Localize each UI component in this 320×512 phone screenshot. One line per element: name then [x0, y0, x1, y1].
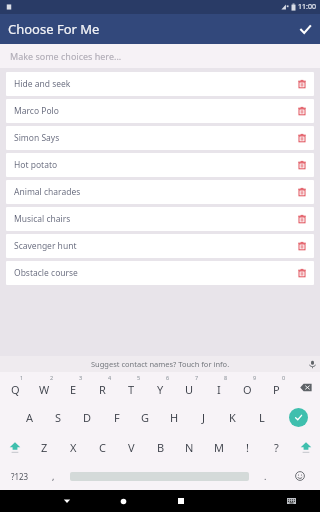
button[interactable]: D [73, 402, 102, 432]
staticText: Q [11, 382, 20, 397]
button[interactable]: Delete Musical chairs [290, 207, 314, 231]
button[interactable]: Delete Hot potato [290, 153, 314, 177]
staticText: B [157, 440, 165, 455]
button[interactable]: L [247, 402, 276, 432]
staticText: A [26, 410, 34, 425]
staticText: 6 [166, 374, 170, 381]
button[interactable]: Home [95, 490, 152, 512]
staticText: Suggest contact names? Touch for info. [91, 359, 230, 369]
button[interactable]: Delete Animal charades [290, 180, 314, 204]
staticText: ! [246, 440, 249, 455]
button[interactable]: ! [233, 432, 262, 462]
staticText: P [273, 382, 280, 397]
staticText: M [214, 440, 224, 455]
button[interactable]: U [175, 372, 204, 402]
button[interactable]: E [59, 372, 88, 402]
button[interactable]: Scavenger hunt [6, 234, 314, 258]
staticText: Z [41, 440, 48, 455]
staticText: N [185, 440, 194, 455]
button[interactable]: J [189, 402, 218, 432]
button[interactable]: Backspace [291, 372, 320, 402]
staticText: V [128, 440, 135, 455]
button[interactable]: Enter [276, 402, 320, 432]
staticText: Animal charades [14, 186, 290, 198]
staticText: W [39, 382, 50, 397]
button[interactable]: Z [30, 432, 59, 462]
button[interactable]: Emoji [280, 462, 320, 490]
button[interactable]: R [88, 372, 117, 402]
button[interactable]: P [262, 372, 291, 402]
staticText: Make some choices here... [10, 50, 122, 62]
staticText: C [99, 440, 106, 455]
staticText: D [83, 410, 92, 425]
button[interactable]: Recent apps [152, 490, 209, 512]
button[interactable]: M [204, 432, 233, 462]
button[interactable]: Space [68, 462, 251, 490]
button[interactable]: Marco Polo [6, 99, 314, 123]
button[interactable]: H [160, 402, 189, 432]
staticText: . [264, 470, 267, 482]
staticText: 1 [20, 374, 24, 381]
button[interactable]: S [44, 402, 73, 432]
button[interactable]: Done [290, 14, 320, 44]
button[interactable]: V [117, 432, 146, 462]
staticText: Hot potato [14, 159, 290, 171]
button[interactable]: Simon Says [6, 126, 314, 150]
staticText: S [55, 410, 62, 425]
staticText: Marco Polo [14, 105, 290, 117]
staticText: J [202, 410, 206, 425]
staticText: Y [157, 382, 164, 397]
staticText: L [259, 410, 265, 425]
button[interactable]: , [39, 462, 68, 490]
button[interactable]: Y [146, 372, 175, 402]
button[interactable]: K [218, 402, 247, 432]
button[interactable]: I [204, 372, 233, 402]
button[interactable]: Delete Obstacle course [290, 261, 314, 285]
button[interactable]: C [88, 432, 117, 462]
staticText: ?123 [11, 471, 29, 482]
staticText: 2 [50, 374, 54, 381]
button[interactable]: Hot potato [6, 153, 314, 177]
staticText: 8 [224, 374, 228, 381]
button[interactable]: O [233, 372, 262, 402]
button[interactable]: Shift [0, 432, 30, 462]
staticText: 7 [195, 374, 199, 381]
button[interactable]: W [30, 372, 59, 402]
button[interactable]: Q [0, 372, 30, 402]
button[interactable]: N [175, 432, 204, 462]
button[interactable]: Animal charades [6, 180, 314, 204]
staticText: 11:00 [298, 2, 316, 12]
button[interactable]: Delete Marco Polo [290, 99, 314, 123]
staticText: X [70, 440, 77, 455]
button[interactable]: Musical chairs [6, 207, 314, 231]
button[interactable]: F [102, 402, 131, 432]
staticText: Simon Says [14, 132, 290, 144]
button[interactable]: ?123 [0, 462, 39, 490]
button[interactable]: T [117, 372, 146, 402]
button[interactable]: . [251, 462, 280, 490]
staticText: Obstacle course [14, 267, 290, 279]
button[interactable]: Back [38, 490, 95, 512]
button[interactable]: Delete Hide and seek [290, 72, 314, 96]
button[interactable]: B [146, 432, 175, 462]
button[interactable]: G [131, 402, 160, 432]
staticText: ? [274, 440, 279, 455]
button[interactable]: X [59, 432, 88, 462]
button[interactable]: Switch keyboard [266, 490, 316, 512]
staticText: T [128, 382, 135, 397]
button[interactable]: Delete Simon Says [290, 126, 314, 150]
button[interactable]: A [15, 402, 44, 432]
staticText: F [114, 410, 120, 425]
button[interactable]: Obstacle course [6, 261, 314, 285]
staticText: U [185, 382, 194, 397]
button[interactable]: ? [262, 432, 291, 462]
button[interactable]: Hide and seek [6, 72, 314, 96]
staticText: H [170, 410, 179, 425]
button[interactable]: Delete Scavenger hunt [290, 234, 314, 258]
button[interactable]: Voice input [304, 356, 320, 372]
staticText: Choose For Me [8, 20, 100, 38]
staticText: 3 [79, 374, 83, 381]
button[interactable]: Shift [291, 432, 320, 462]
staticText: 0 [282, 374, 286, 381]
staticText: G [141, 410, 150, 425]
